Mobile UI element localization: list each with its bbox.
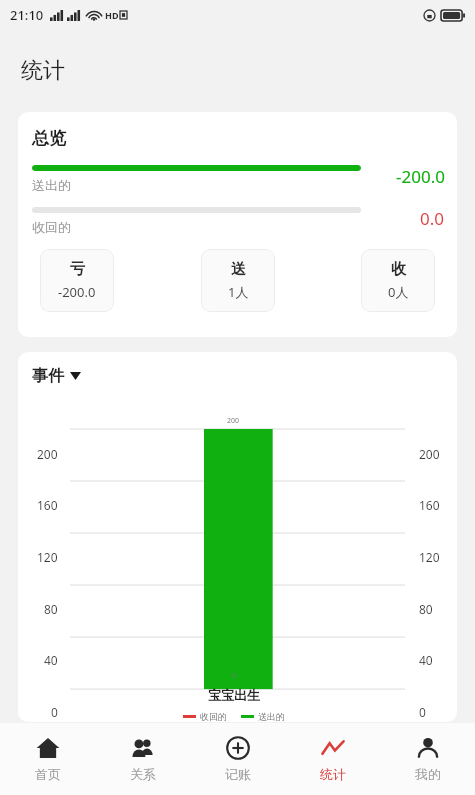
- staticText: 200: [37, 446, 58, 462]
- staticText: 收回的: [32, 219, 71, 235]
- staticText: 收回的: [200, 711, 227, 722]
- other: 记账: [226, 736, 250, 760]
- staticText: 收: [391, 260, 406, 279]
- staticText: 宝宝出生: [208, 687, 260, 703]
- staticText: 0: [51, 704, 58, 720]
- staticText: 总览: [32, 128, 66, 149]
- other: 关系: [131, 736, 155, 760]
- button[interactable]: 首页: [0, 723, 95, 795]
- button[interactable]: 记账: [190, 723, 285, 795]
- staticText: 160: [419, 497, 440, 513]
- other: 首页: [36, 736, 60, 760]
- staticText: 40: [44, 652, 58, 668]
- button[interactable]: 亏: [40, 249, 114, 312]
- staticText: 首页: [35, 766, 61, 782]
- staticText: 160: [37, 497, 58, 513]
- staticText: 亏: [70, 260, 85, 279]
- staticText: 记账: [225, 766, 251, 782]
- button[interactable]: 收: [361, 249, 435, 312]
- staticText: 统计: [320, 766, 346, 782]
- staticText: 送出的: [258, 711, 285, 722]
- staticText: 200: [419, 446, 440, 462]
- staticText: 1人: [228, 283, 249, 301]
- staticText: 送: [231, 260, 246, 279]
- staticText: 0人: [388, 283, 409, 301]
- button[interactable]: 事件: [32, 366, 81, 386]
- staticText: 0: [419, 704, 426, 720]
- staticText: 关系: [130, 766, 156, 782]
- button[interactable]: 关系: [95, 723, 190, 795]
- staticText: 200: [227, 416, 240, 426]
- other: 统计: [321, 736, 345, 760]
- staticText: 80: [419, 601, 433, 617]
- staticText: 80: [44, 601, 58, 617]
- staticText: -200.0: [58, 283, 96, 301]
- button[interactable]: 我的: [380, 723, 475, 795]
- staticText: 21:10: [10, 6, 44, 24]
- staticText: 送出的: [32, 177, 71, 193]
- button[interactable]: 统计: [285, 723, 380, 795]
- staticText: 统计: [21, 57, 65, 85]
- staticText: 0: [232, 671, 237, 681]
- button[interactable]: 送: [201, 249, 275, 312]
- staticText: 事件: [32, 366, 64, 386]
- staticText: 120: [37, 549, 58, 565]
- staticText: HD: [105, 9, 119, 21]
- staticText: 120: [419, 549, 440, 565]
- staticText: 我的: [415, 766, 441, 782]
- staticText: 0.0: [420, 207, 445, 230]
- staticText: 40: [419, 652, 433, 668]
- staticText: -200.0: [396, 165, 445, 188]
- other: 我的: [416, 736, 440, 760]
